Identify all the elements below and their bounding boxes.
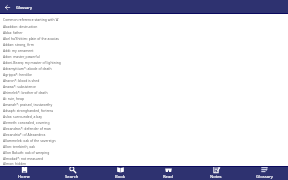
staticText: Adoni-Bezeq: my master of lightning xyxy=(3,60,61,65)
staticText: Aharon*: blood is shed xyxy=(3,78,40,83)
staticText: Alexandria*: of Alexandros xyxy=(3,132,46,137)
button[interactable]: Glossary xyxy=(240,166,288,180)
button[interactable]: Abaddon: destruction xyxy=(0,23,288,29)
staticText: Glossary xyxy=(16,5,32,10)
staticText: Home xyxy=(18,174,30,180)
staticText: Amanah*: praised, trustworthy xyxy=(3,102,53,107)
staticText: Adsaph: stronghanded, fortress xyxy=(3,108,54,113)
staticText: Addi: my ornament xyxy=(3,48,34,53)
staticText: Read xyxy=(163,174,173,180)
button[interactable]: Aharon*: blood is shed xyxy=(0,77,288,83)
staticText: Agrippa*: herolike xyxy=(3,72,32,77)
staticText: Allammelek: oak of the sovereign xyxy=(3,138,56,143)
staticText: Anawa*: subsistence xyxy=(3,84,36,89)
staticText: Ahimelek*: brother of death xyxy=(3,90,48,95)
button[interactable]: Alexandros*: defender of man xyxy=(0,125,288,131)
staticText: Abel ha'Shittim: plain of the acacias xyxy=(3,36,59,41)
button[interactable]: Book xyxy=(96,166,144,180)
staticText: Abaddon: destruction xyxy=(3,24,38,29)
button[interactable]: Addan: strong, firm xyxy=(0,41,288,47)
button[interactable]: Abel ha'Shittim: plain of the acacias xyxy=(0,35,288,41)
button[interactable]: Agrippa*: herolike xyxy=(0,71,288,77)
button[interactable]: Almon: hidden xyxy=(0,161,288,166)
staticText: Alemeth: concealed, covering xyxy=(3,120,50,125)
staticText: Almon: hidden xyxy=(3,161,27,166)
staticText: Ai: ruin, heap xyxy=(3,96,24,101)
button[interactable]: Search xyxy=(48,166,96,180)
staticText: Search xyxy=(65,174,79,180)
button[interactable]: Read xyxy=(144,166,192,180)
button[interactable]: Amanah*: praised, trustworthy xyxy=(0,101,288,107)
staticText: Allon: terebinth, oak xyxy=(3,144,36,149)
button[interactable]: Almodad*: not measured xyxy=(0,155,288,161)
button[interactable]: Allon Bakuth: oak of weeping xyxy=(0,149,288,155)
button[interactable]: Adoni-Bezeq: my master of lightning xyxy=(0,59,288,65)
staticText: Addan: strong, firm xyxy=(3,42,34,47)
staticText: Aslos: surrounded, a bay xyxy=(3,114,43,119)
button[interactable]: Alemeth: concealed, covering xyxy=(0,119,288,125)
button[interactable]: Ahimelek*: brother of death xyxy=(0,89,288,95)
staticText: Adon: master, powerful xyxy=(3,54,40,59)
button[interactable]: Aslos: surrounded, a bay xyxy=(0,113,288,119)
staticText: Almodad*: not measured xyxy=(3,156,44,161)
button[interactable]: Home xyxy=(0,166,48,180)
button[interactable]: Adsaph: stronghanded, fortress xyxy=(0,107,288,113)
button[interactable]: Ai: ruin, heap xyxy=(0,95,288,101)
button[interactable]: Allon: terebinth, oak xyxy=(0,143,288,149)
button[interactable]: Abba: father xyxy=(0,29,288,35)
button[interactable]: Adramyttium*: abode of death xyxy=(0,65,288,71)
staticText: Abba: father xyxy=(3,30,23,35)
button[interactable]: Notes xyxy=(192,166,240,180)
button[interactable]: Adon: master, powerful xyxy=(0,53,288,59)
button[interactable]: Alexandria*: of Alexandros xyxy=(0,131,288,137)
staticText: Common reference starting with 'A' xyxy=(3,17,59,22)
staticText: Notes xyxy=(210,174,222,180)
button[interactable]: Back xyxy=(0,1,13,14)
staticText: Allon Bakuth: oak of weeping xyxy=(3,150,50,155)
staticText: Book xyxy=(115,174,126,180)
button[interactable]: Addi: my ornament xyxy=(0,47,288,53)
staticText: Glossary xyxy=(256,174,273,180)
staticText: Adramyttium*: abode of death xyxy=(3,66,52,71)
button[interactable]: Anawa*: subsistence xyxy=(0,83,288,89)
button[interactable]: Allammelek: oak of the sovereign xyxy=(0,137,288,143)
staticText: Alexandros*: defender of man xyxy=(3,126,51,131)
